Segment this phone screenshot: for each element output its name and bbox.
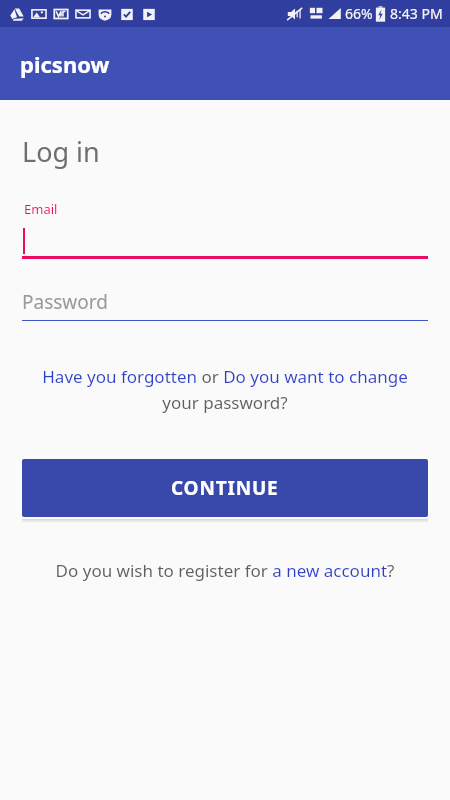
staticText: 66% xyxy=(345,4,373,23)
staticText: Do you wish to register for a new accoun… xyxy=(50,559,400,582)
button[interactable]: Have you forgotten or Do you want to cha… xyxy=(22,365,428,414)
button[interactable]: Do you wish to register for a new accoun… xyxy=(50,559,400,582)
button[interactable]: Password xyxy=(22,287,428,321)
staticText: 8:43 PM xyxy=(390,4,443,23)
staticText: Log in xyxy=(22,133,100,170)
button[interactable]: Email xyxy=(22,200,428,259)
staticText: CONTINUE xyxy=(171,475,279,501)
staticText: Have you forgotten or Do you want to cha… xyxy=(22,365,428,414)
staticText: Email xyxy=(24,200,58,218)
staticText: Password xyxy=(22,289,108,315)
staticText: picsnow xyxy=(20,49,110,79)
button[interactable]: CONTINUE xyxy=(22,459,428,517)
